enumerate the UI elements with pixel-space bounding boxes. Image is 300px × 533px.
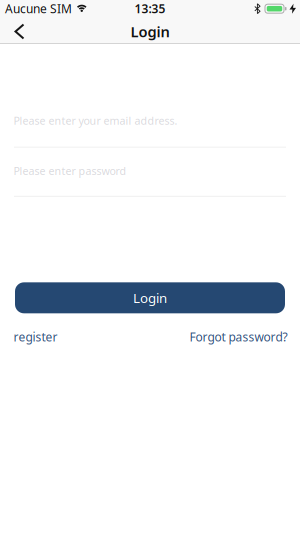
staticText: register bbox=[13, 329, 57, 345]
button[interactable]: Password bbox=[0, 164, 300, 197]
button[interactable]: Back bbox=[0, 20, 33, 42]
button[interactable]: register bbox=[13, 329, 57, 345]
staticText: Aucune SIM bbox=[5, 1, 72, 17]
button[interactable]: Login bbox=[15, 282, 285, 313]
staticText: Forgot password? bbox=[189, 329, 287, 345]
staticText: 13:35 bbox=[134, 1, 165, 17]
staticText: Login bbox=[133, 289, 167, 307]
button[interactable]: Email address bbox=[0, 113, 300, 148]
staticText: Please enter password bbox=[13, 164, 126, 178]
button[interactable]: Forgot password? bbox=[189, 329, 287, 345]
staticText: Login bbox=[130, 22, 169, 41]
staticText: Please enter your email address. bbox=[13, 113, 177, 128]
